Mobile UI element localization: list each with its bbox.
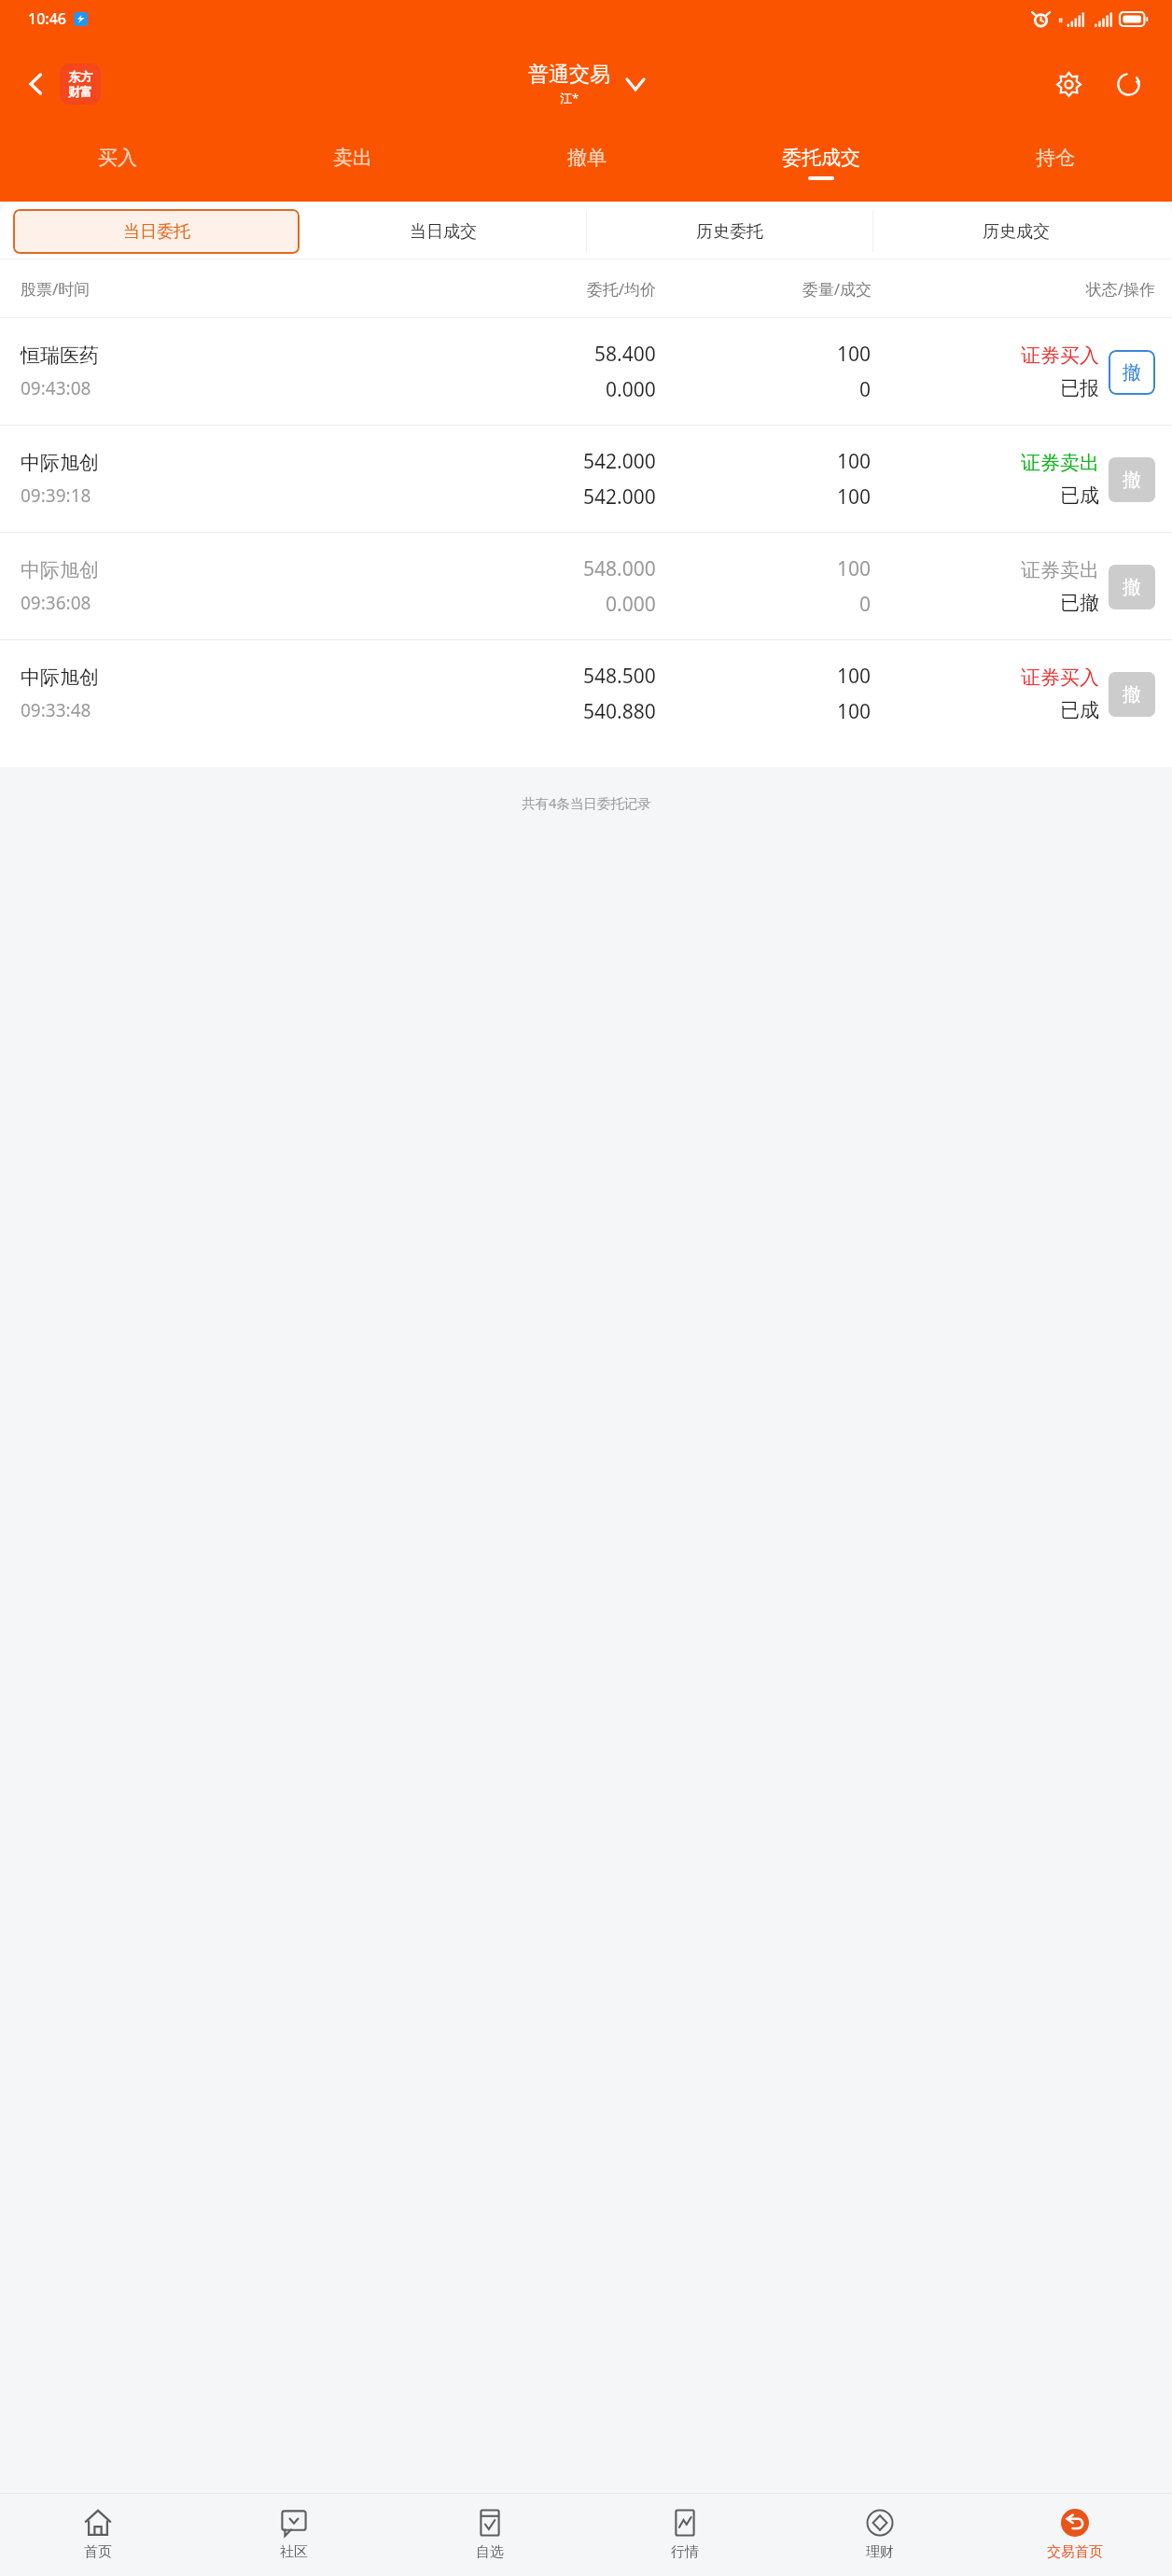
staticText: 委量/成交 xyxy=(656,278,872,300)
staticText: 09:43:08 xyxy=(21,376,91,400)
staticText: 财富 xyxy=(68,84,92,99)
button[interactable]: 普通交易 xyxy=(528,62,644,106)
staticText: 542.000 xyxy=(583,483,656,511)
staticText: 社区 xyxy=(280,2543,308,2561)
staticText: 证券卖出 xyxy=(1021,451,1099,475)
staticText: 交易首页 xyxy=(1047,2543,1103,2561)
staticText: 09:36:08 xyxy=(21,591,91,615)
button[interactable]: 历史成交 xyxy=(873,209,1159,254)
staticText: 普通交易 xyxy=(528,62,610,88)
button[interactable]: 撤单 xyxy=(469,131,704,194)
staticText: 股票/时间 xyxy=(21,278,361,300)
staticText: 恒瑞医药 xyxy=(21,343,99,368)
button[interactable]: Refresh xyxy=(1105,61,1151,107)
staticText: 自选 xyxy=(476,2543,504,2561)
button[interactable]: 历史委托 xyxy=(587,209,872,254)
button[interactable]: 当日委托 xyxy=(13,209,300,254)
button[interactable]: 行情 xyxy=(587,2494,782,2576)
staticText: 100 xyxy=(837,483,872,511)
staticText: 0 xyxy=(859,591,872,618)
button[interactable]: 撤 xyxy=(1109,457,1155,502)
staticText: 0 xyxy=(859,376,872,403)
button[interactable]: 中际旭创 xyxy=(0,533,1172,639)
staticText: 共有4条当日委托记录 xyxy=(522,793,651,812)
button[interactable]: Back xyxy=(13,61,60,107)
button[interactable]: 中际旭创 xyxy=(0,640,1172,747)
staticText: 江* xyxy=(560,90,579,106)
staticText: 100 xyxy=(837,663,872,690)
staticText: 理财 xyxy=(866,2543,894,2561)
staticText: 撤 xyxy=(1123,576,1141,599)
staticText: 10:46 xyxy=(28,8,66,29)
staticText: 历史成交 xyxy=(983,221,1050,243)
button[interactable]: Settings xyxy=(1045,61,1092,107)
button[interactable]: 自选 xyxy=(392,2494,587,2576)
staticText: 中际旭创 xyxy=(21,558,99,582)
button[interactable]: 首页 xyxy=(0,2494,196,2576)
staticText: 100 xyxy=(837,555,872,582)
staticText: 540.880 xyxy=(583,698,656,725)
button[interactable]: 撤 xyxy=(1109,672,1155,717)
staticText: 撤 xyxy=(1123,361,1141,385)
staticText: 证券买入 xyxy=(1021,343,1099,368)
staticText: 首页 xyxy=(84,2543,112,2561)
staticText: 已报 xyxy=(1060,376,1099,400)
button[interactable]: 社区 xyxy=(196,2494,392,2576)
button[interactable]: 持仓 xyxy=(938,131,1172,194)
staticText: 当日委托 xyxy=(123,221,190,243)
staticText: 持仓 xyxy=(1036,146,1075,170)
staticText: 当日成交 xyxy=(410,221,477,243)
staticText: 东方 xyxy=(68,69,92,84)
button[interactable]: 撤 xyxy=(1109,565,1155,609)
staticText: 撤 xyxy=(1123,683,1141,707)
staticText: 历史委托 xyxy=(696,221,763,243)
staticText: 买入 xyxy=(98,146,137,170)
staticText: 证券买入 xyxy=(1021,665,1099,690)
staticText: 撤 xyxy=(1123,469,1141,492)
staticText: 542.000 xyxy=(583,448,656,475)
staticText: 已成 xyxy=(1060,698,1099,722)
staticText: 中际旭创 xyxy=(21,665,99,690)
staticText: 已成 xyxy=(1060,483,1099,508)
button[interactable]: 当日成交 xyxy=(300,209,586,254)
staticText: 548.000 xyxy=(583,555,656,582)
staticText: 证券卖出 xyxy=(1021,558,1099,582)
staticText: 委托/均价 xyxy=(361,278,656,300)
staticText: 已撤 xyxy=(1060,591,1099,615)
button[interactable]: 恒瑞医药 xyxy=(0,318,1172,425)
staticText: 58.400 xyxy=(594,341,656,368)
staticText: 09:39:18 xyxy=(21,483,91,508)
staticText: 09:33:48 xyxy=(21,698,91,722)
button[interactable]: 委托成交 xyxy=(704,131,938,194)
staticText: 卖出 xyxy=(333,146,372,170)
staticText: 状态/操作 xyxy=(872,278,1155,300)
staticText: 100 xyxy=(837,698,872,725)
staticText: 中际旭创 xyxy=(21,451,99,475)
button[interactable]: 买入 xyxy=(0,131,235,194)
staticText: 0.000 xyxy=(606,376,656,403)
button[interactable]: 中际旭创 xyxy=(0,426,1172,532)
staticText: 委托成交 xyxy=(782,146,860,170)
button[interactable]: 交易首页 xyxy=(977,2494,1172,2576)
staticText: 548.500 xyxy=(583,663,656,690)
staticText: 0.000 xyxy=(606,591,656,618)
staticText: 撤单 xyxy=(567,146,607,170)
staticText: 100 xyxy=(837,341,872,368)
button[interactable]: 卖出 xyxy=(235,131,469,194)
button[interactable]: 东方财富 xyxy=(60,63,101,105)
staticText: 100 xyxy=(837,448,872,475)
button[interactable]: 理财 xyxy=(782,2494,977,2576)
staticText: 行情 xyxy=(671,2543,699,2561)
button[interactable]: 撤 xyxy=(1109,350,1155,395)
